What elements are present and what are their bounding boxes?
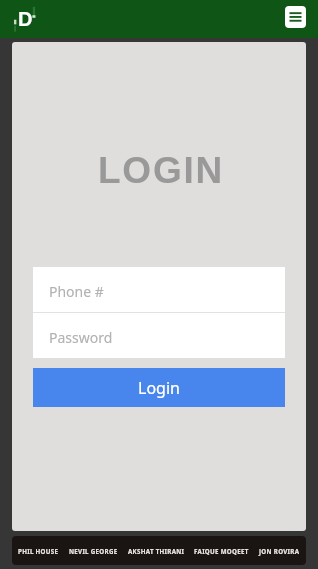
- button[interactable]: Open navigation menu: [285, 6, 306, 28]
- staticText: PHIL HOUSE: [18, 547, 59, 555]
- button[interactable]: Phone #: [33, 267, 285, 312]
- button[interactable]: JON ROVIRA: [259, 547, 300, 555]
- button[interactable]: NEVIL GEORGE: [69, 547, 118, 555]
- staticText: LOGIN: [14, 150, 306, 191]
- staticText: JON ROVIRA: [259, 547, 300, 555]
- staticText: AKSHAT THIRANI: [128, 547, 185, 555]
- staticText: Phone #: [49, 282, 104, 301]
- button[interactable]: PHIL HOUSE: [18, 547, 59, 555]
- staticText: Login: [138, 377, 180, 399]
- staticText: D: [18, 8, 33, 30]
- button[interactable]: Password: [33, 313, 285, 358]
- button[interactable]: Login: [33, 368, 285, 407]
- button[interactable]: Home: [10, 2, 42, 34]
- button[interactable]: AKSHAT THIRANI: [128, 547, 185, 555]
- button[interactable]: FAIQUE MOQEET: [194, 547, 249, 555]
- staticText: Password: [49, 328, 113, 347]
- staticText: FAIQUE MOQEET: [194, 547, 249, 555]
- staticText: NEVIL GEORGE: [69, 547, 118, 555]
